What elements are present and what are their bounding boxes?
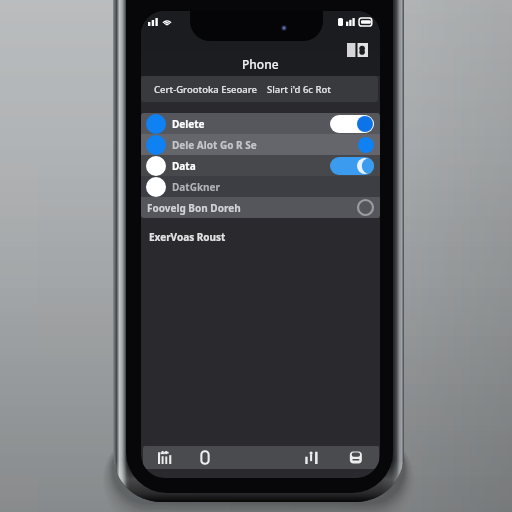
staticText: Cert-Grootoka Eseoare Slart i'd 6c Rot bbox=[154, 83, 331, 96]
staticText: Foovelg Bon Doreh bbox=[147, 201, 241, 215]
button[interactable]: Data bbox=[141, 155, 380, 176]
button[interactable]: Tune bbox=[150, 446, 180, 469]
staticText: Data bbox=[172, 159, 196, 173]
staticText: Phone bbox=[242, 56, 279, 72]
button[interactable]: Stats bbox=[297, 446, 327, 469]
staticText: Dele Alot Go R Se bbox=[172, 138, 257, 152]
staticText: Delete bbox=[172, 117, 205, 131]
staticText: DatGkner bbox=[172, 180, 221, 194]
button[interactable]: Delete bbox=[141, 113, 380, 134]
button[interactable]: Device bbox=[190, 446, 220, 469]
button[interactable]: Account bbox=[341, 446, 371, 469]
button[interactable]: Foovelg Bon Doreh bbox=[141, 197, 380, 218]
button[interactable]: Dele Alot Go R Se bbox=[141, 134, 380, 155]
button[interactable]: DatGkner bbox=[141, 176, 380, 197]
button[interactable]: Layout options bbox=[347, 43, 368, 57]
button[interactable]: Cert-Grootoka Eseoare Slart i'd 6c Rot bbox=[141, 76, 378, 102]
staticText: ExerVoas Roust bbox=[149, 230, 226, 244]
